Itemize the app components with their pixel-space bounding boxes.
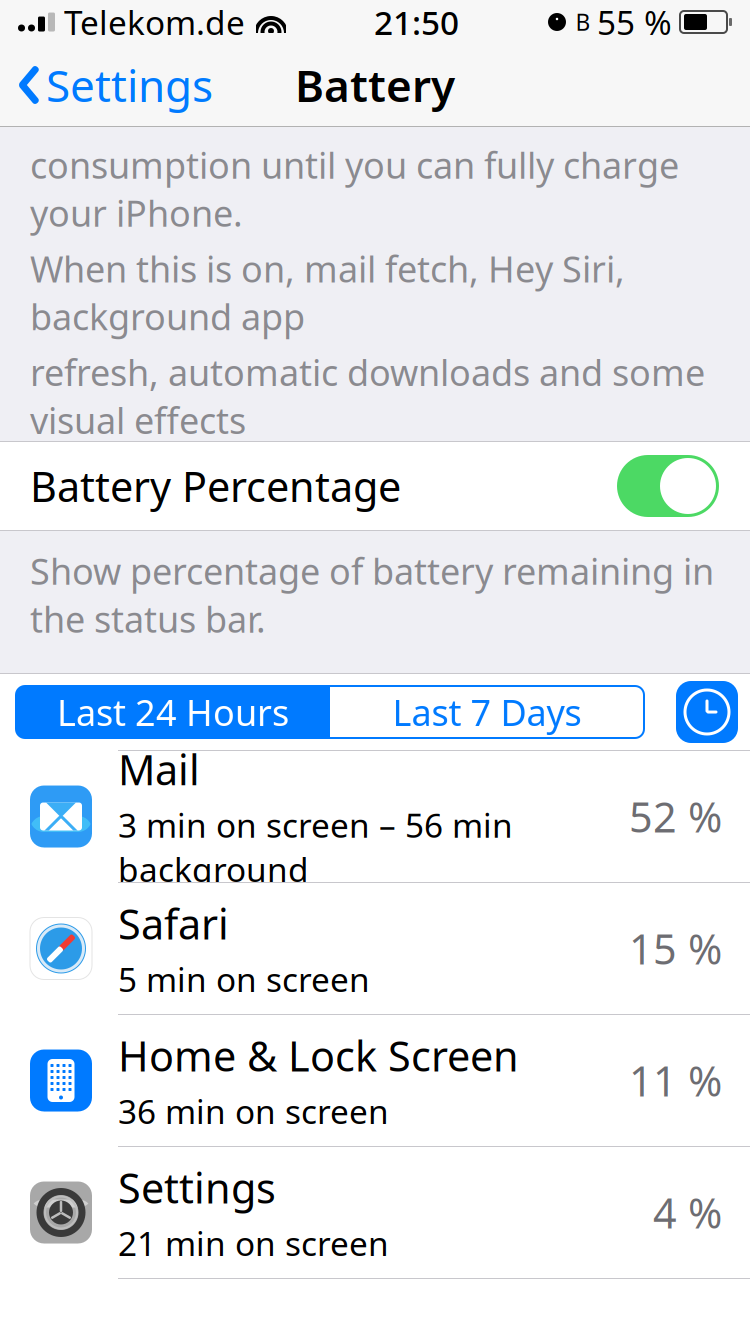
staticText: 52 % — [629, 789, 722, 844]
staticText: Battery Percentage — [30, 459, 401, 513]
staticText: are reduced or turned off. — [30, 452, 464, 500]
staticText: 21 min on screen — [118, 1221, 389, 1265]
staticText: B — [575, 7, 590, 37]
staticText: When this is on, mail fetch, Hey Siri, b… — [30, 245, 625, 340]
staticText: BATTERY USAGE — [30, 695, 291, 741]
staticText: Telekom.de — [64, 0, 245, 44]
button[interactable]: Battery Percentage — [0, 442, 750, 530]
staticText: Settings — [118, 1160, 276, 1215]
staticText: 11 % — [629, 1053, 722, 1108]
button[interactable]: Settings — [0, 48, 213, 122]
button[interactable]: Settings — [0, 1147, 750, 1279]
button[interactable]: Last 24 Hours — [16, 686, 330, 738]
button[interactable]: Safari — [0, 883, 750, 1015]
staticText: 55 % — [597, 0, 672, 44]
staticText: Last 24 Hours — [57, 688, 289, 736]
staticText: Mail — [118, 742, 200, 797]
button[interactable]: Battery usage by time — [676, 681, 738, 743]
staticText: 15 % — [629, 921, 722, 976]
staticText: refresh, automatic downloads and some vi… — [30, 348, 705, 444]
staticText: 3 min on screen – 56 min background — [118, 803, 513, 891]
staticText: 21:50 — [374, 0, 459, 44]
staticText: 5 min on screen — [118, 957, 370, 1001]
staticText: Safari — [118, 896, 229, 951]
staticText: Last 7 Days — [392, 688, 581, 736]
staticText: 36 min on screen — [118, 1089, 389, 1133]
staticText: For quicker access to Low Power Mode, yo… — [30, 550, 688, 645]
button[interactable]: Home & Lock Screen — [0, 1015, 750, 1147]
staticText: Show percentage of battery remaining in … — [30, 547, 714, 643]
staticText: 4 % — [653, 1185, 722, 1240]
button[interactable]: Last 7 Days — [330, 686, 644, 738]
staticText: consumption until you can fully charge y… — [30, 141, 679, 237]
staticText: Home & Lock Screen — [118, 1028, 519, 1083]
staticText: Settings — [46, 56, 213, 114]
staticText: Control Centre in Control Centre setting… — [30, 653, 723, 701]
staticText: Battery — [295, 56, 455, 114]
button[interactable]: Mail — [0, 751, 750, 883]
